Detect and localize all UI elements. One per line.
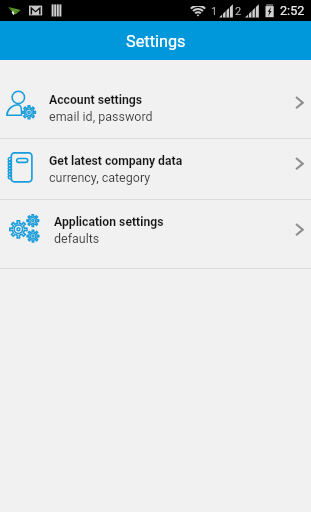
staticText: 2:52	[280, 3, 305, 18]
button[interactable]: Application settings	[0, 200, 311, 268]
staticText: currency, category	[49, 170, 151, 185]
staticText: Account settings	[49, 93, 143, 107]
staticText: defaults	[54, 231, 100, 246]
staticText: Get latest company data	[49, 154, 183, 168]
staticText: Application settings	[54, 215, 164, 229]
staticText: 1	[211, 5, 218, 18]
staticText: 2	[235, 5, 242, 18]
staticText: Settings	[126, 32, 186, 51]
button[interactable]: Account settings	[0, 60, 311, 138]
button[interactable]: Get latest company data	[0, 139, 311, 199]
staticText: email id, password	[49, 109, 153, 124]
